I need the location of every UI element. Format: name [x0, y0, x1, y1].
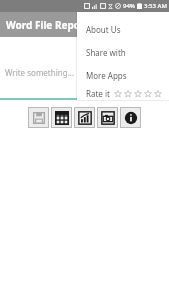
button[interactable]: Rate it — [86, 87, 169, 100]
staticText: Rate it — [86, 88, 110, 99]
staticText: Word File Report — [6, 18, 89, 32]
staticText: About Us — [86, 24, 121, 35]
button[interactable]: About Us — [86, 18, 169, 41]
button[interactable]: Save — [28, 107, 49, 128]
button[interactable]: Info — [120, 107, 141, 128]
staticText: 3:53 AM — [144, 2, 167, 10]
staticText: Write something... — [5, 67, 75, 78]
staticText: More Apps — [86, 70, 127, 81]
button[interactable]: Table — [51, 107, 72, 128]
button[interactable]: More Apps — [86, 64, 169, 87]
staticText: Share with — [86, 47, 126, 58]
button[interactable]: Image — [97, 107, 118, 128]
staticText: 94% — [123, 2, 135, 10]
button[interactable]: Share with — [86, 41, 169, 64]
button[interactable]: Chart — [74, 107, 95, 128]
